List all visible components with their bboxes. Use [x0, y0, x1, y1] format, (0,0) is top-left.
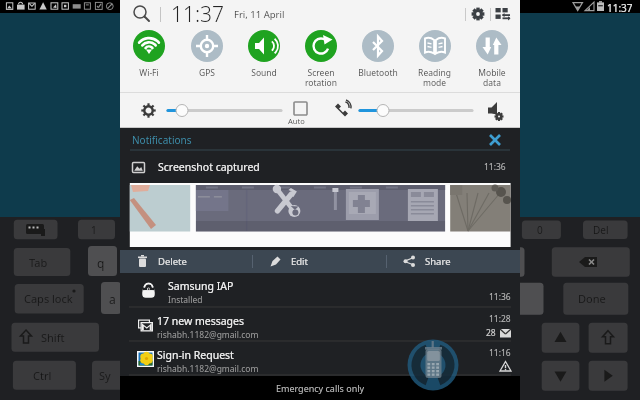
- button[interactable]: GPS: [178, 30, 235, 79]
- staticText: Ctrl: [33, 368, 52, 383]
- staticText: Installed: [168, 294, 203, 306]
- button[interactable]: Mobile data: [463, 30, 520, 88]
- button[interactable]: Reading mode: [406, 30, 463, 88]
- staticText: Emergency calls only: [276, 382, 365, 394]
- staticText: q: [97, 255, 105, 271]
- staticText: Done: [578, 291, 606, 306]
- staticText: 1: [91, 223, 97, 237]
- staticText: Edit: [291, 255, 309, 268]
- button[interactable]: 17 new messages: [120, 308, 520, 342]
- staticText: Delete: [158, 255, 187, 268]
- button[interactable]: Edit quick settings: [491, 2, 515, 26]
- staticText: Bluetooth: [358, 67, 398, 79]
- staticText: Share: [425, 255, 451, 268]
- staticText: 11:36: [484, 161, 506, 173]
- staticText: Caps lock: [24, 291, 73, 306]
- button[interactable]: Share: [387, 250, 520, 273]
- button[interactable]: Settings: [466, 2, 490, 26]
- button[interactable]: Sign-in Request: [120, 342, 520, 376]
- staticText: 28: [486, 327, 496, 339]
- staticText: a: [109, 291, 116, 307]
- button[interactable]: Clear all notifications: [486, 131, 504, 149]
- staticText: Screenshot captured: [158, 160, 260, 174]
- staticText: Screen rotation: [305, 67, 337, 88]
- staticText: Sound: [251, 67, 277, 79]
- button[interactable]: Delete: [120, 250, 252, 273]
- button[interactable]: Edit: [253, 250, 386, 273]
- staticText: 17 new messages: [157, 314, 245, 328]
- staticText: 11:36: [489, 291, 511, 303]
- staticText: 11:37: [171, 0, 225, 28]
- button[interactable]: Wi-Fi: [120, 30, 178, 79]
- staticText: rishabh.1182@gmail.com: [157, 329, 259, 341]
- staticText: 11:37: [607, 1, 633, 15]
- staticText: Notifications: [132, 133, 192, 147]
- staticText: Reading mode: [418, 67, 451, 88]
- staticText: 0: [537, 223, 543, 237]
- staticText: Fri, 11 April: [234, 8, 285, 21]
- staticText: rishabh.1182@gmail.com: [157, 363, 259, 375]
- staticText: Wi-Fi: [139, 67, 159, 79]
- button[interactable]: Screen rotation: [292, 30, 349, 88]
- staticText: Mobile data: [478, 67, 506, 88]
- staticText: Shift: [41, 330, 65, 345]
- staticText: 11:28: [489, 313, 511, 325]
- staticText: Auto: [288, 116, 305, 126]
- button[interactable]: Screenshot captured: [120, 151, 520, 183]
- button[interactable]: Samsung IAP: [120, 273, 520, 308]
- staticText: Samsung IAP: [168, 279, 234, 293]
- staticText: GPS: [199, 67, 215, 79]
- staticText: 11:16: [489, 347, 511, 359]
- staticText: Sign-in Request: [157, 348, 234, 362]
- button[interactable]: Sound: [235, 30, 292, 79]
- staticText: Tab: [29, 255, 48, 270]
- staticText: Sy: [99, 368, 111, 383]
- staticText: Del: [593, 223, 609, 237]
- button[interactable]: Search: [133, 5, 151, 23]
- button[interactable]: Bluetooth: [349, 30, 406, 79]
